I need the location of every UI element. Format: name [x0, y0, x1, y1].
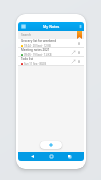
button[interactable]: Delete note [76, 59, 81, 64]
staticText: Todo list [21, 57, 34, 61]
staticText: Meeting notes 2021 [21, 48, 50, 52]
button[interactable]: Labels [77, 31, 82, 39]
button[interactable]: Open navigation drawer [21, 24, 26, 29]
button[interactable]: Home [47, 152, 56, 161]
button[interactable]: Todo list [18, 57, 84, 65]
button[interactable]: Edit note [71, 59, 75, 63]
button[interactable]: Meeting notes 2021 [18, 48, 84, 56]
button[interactable]: Delete note [76, 41, 81, 46]
button[interactable]: Edit note [71, 50, 75, 54]
staticText: My Notes [43, 24, 60, 29]
button[interactable]: Search [18, 31, 84, 39]
staticText: Grocery list for weekend [21, 39, 57, 43]
button[interactable]: Delete note [76, 50, 81, 55]
staticText: Sun 11 Sep · 802 B [24, 62, 47, 65]
button[interactable]: Grocery list for weekend [18, 39, 84, 47]
staticText: Search [21, 33, 32, 37]
staticText: 18:24 · 20 Sept · 12 KB [24, 44, 51, 47]
button[interactable]: Recent apps [65, 152, 74, 161]
button[interactable]: More options [79, 24, 82, 29]
staticText: 09:05 · 19 Sept · 7.4 KB [24, 53, 52, 56]
button[interactable]: New note [40, 141, 62, 149]
button[interactable]: Back [28, 152, 37, 161]
